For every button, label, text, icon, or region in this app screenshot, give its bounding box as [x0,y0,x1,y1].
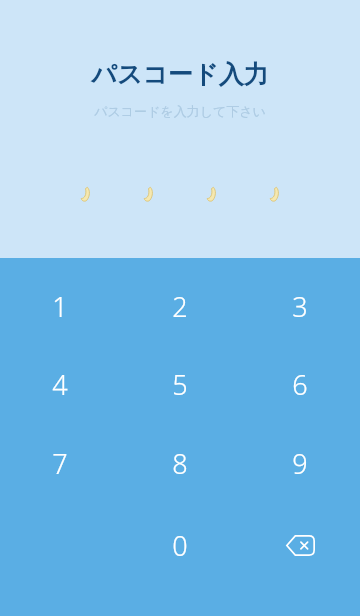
staticText: 9 [292,445,308,481]
staticText: 4 [52,366,68,402]
button[interactable]: 3 [240,288,360,324]
button[interactable]: 1 [0,288,120,324]
staticText: 8 [172,445,188,481]
button[interactable]: Delete [240,527,360,563]
button[interactable]: 7 [0,445,120,481]
staticText: 5 [172,366,188,402]
button[interactable]: 5 [120,366,240,402]
button[interactable]: 0 [120,527,240,563]
button[interactable]: 2 [120,288,240,324]
button[interactable]: 6 [240,366,360,402]
staticText: 3 [292,288,308,324]
staticText: パスコードを入力して下さい [94,103,266,119]
staticText: パスコード入力 [91,59,269,90]
staticText: 1 [52,288,68,324]
button[interactable]: 8 [120,445,240,481]
staticText: 7 [52,445,68,481]
staticText: 6 [292,366,308,402]
button[interactable]: 4 [0,366,120,402]
staticText: 2 [172,288,188,324]
button[interactable]: 9 [240,445,360,481]
staticText: 0 [172,527,188,563]
